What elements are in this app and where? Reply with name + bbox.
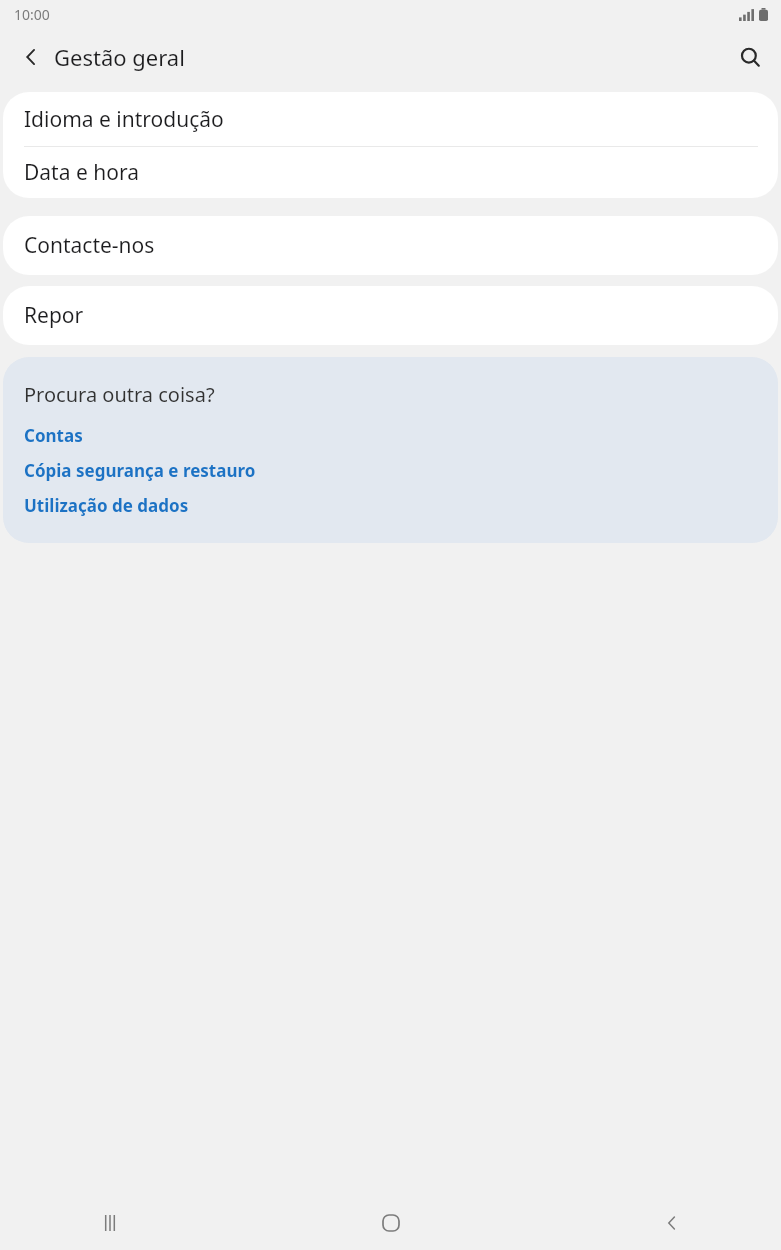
staticText: 10:00 [14, 5, 50, 24]
button[interactable]: Recents [0, 1195, 219, 1250]
button[interactable]: Contas [24, 424, 83, 447]
staticText: Contas [24, 424, 83, 447]
staticText: Idioma e introdução [24, 105, 224, 134]
button[interactable]: Cópia segurança e restauro [24, 459, 256, 482]
button[interactable]: Home [219, 1195, 562, 1250]
button[interactable]: Repor [3, 286, 778, 345]
button[interactable]: Contacte-nos [3, 216, 778, 275]
staticText: Repor [24, 301, 84, 330]
staticText: Procura outra coisa? [24, 381, 215, 408]
button[interactable]: Back [10, 36, 52, 78]
staticText: Gestão geral [54, 42, 185, 72]
button[interactable]: Data e hora [3, 147, 778, 198]
staticText: Contacte-nos [24, 231, 155, 260]
staticText: Utilização de dados [24, 494, 189, 517]
button[interactable]: Search [728, 35, 772, 79]
button[interactable]: Utilização de dados [24, 494, 189, 517]
button[interactable]: Back [562, 1195, 781, 1250]
staticText: Data e hora [24, 158, 139, 187]
button[interactable]: Idioma e introdução [3, 92, 778, 146]
staticText: Cópia segurança e restauro [24, 459, 256, 482]
